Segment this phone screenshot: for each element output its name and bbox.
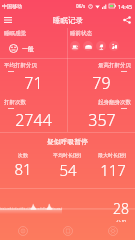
staticText: 54 <box>59 160 77 180</box>
staticText: 打鼾次数 <box>4 99 26 106</box>
staticText: 2744 <box>15 109 52 131</box>
button[interactable]: Settings <box>90 222 135 240</box>
staticText: 一般 <box>22 45 34 53</box>
staticText: 睡眠记录 <box>53 16 83 25</box>
staticText: 疑似呼吸暂停 <box>47 137 88 146</box>
staticText: 最大时长(秒) <box>98 152 127 159</box>
staticText: 分贝 <box>116 219 126 222</box>
staticText: 0K/s <box>76 3 86 9</box>
button[interactable]: Menu <box>0 12 16 28</box>
staticText: 平均打鼾分贝 <box>4 62 37 69</box>
button[interactable]: Bath <box>96 41 106 51</box>
staticText: 14:45 <box>118 3 133 10</box>
staticText: 睡前状态 <box>70 30 92 37</box>
staticText: 79 <box>92 72 111 94</box>
staticText: 次数 <box>18 152 28 158</box>
staticText: 117 <box>100 160 126 180</box>
button[interactable]: Bed <box>83 41 93 51</box>
staticText: 28 <box>113 199 129 218</box>
staticText: 81 <box>14 159 32 179</box>
staticText: 最高打鼾分贝 <box>98 62 131 69</box>
staticText: 357 <box>88 109 116 131</box>
staticText: 中国移动 <box>2 3 22 9</box>
button[interactable]: Reading <box>109 41 119 51</box>
button[interactable]: Coffee <box>70 41 80 51</box>
button[interactable]: Report <box>45 222 90 240</box>
staticText: 睡眠感觉 <box>4 30 26 37</box>
staticText: 71 <box>24 72 43 94</box>
button[interactable]: Record <box>0 222 45 240</box>
button[interactable]: Share <box>119 12 135 28</box>
staticText: 平均时长(秒) <box>53 152 82 159</box>
staticText: 起身翻身次数 <box>98 99 131 106</box>
